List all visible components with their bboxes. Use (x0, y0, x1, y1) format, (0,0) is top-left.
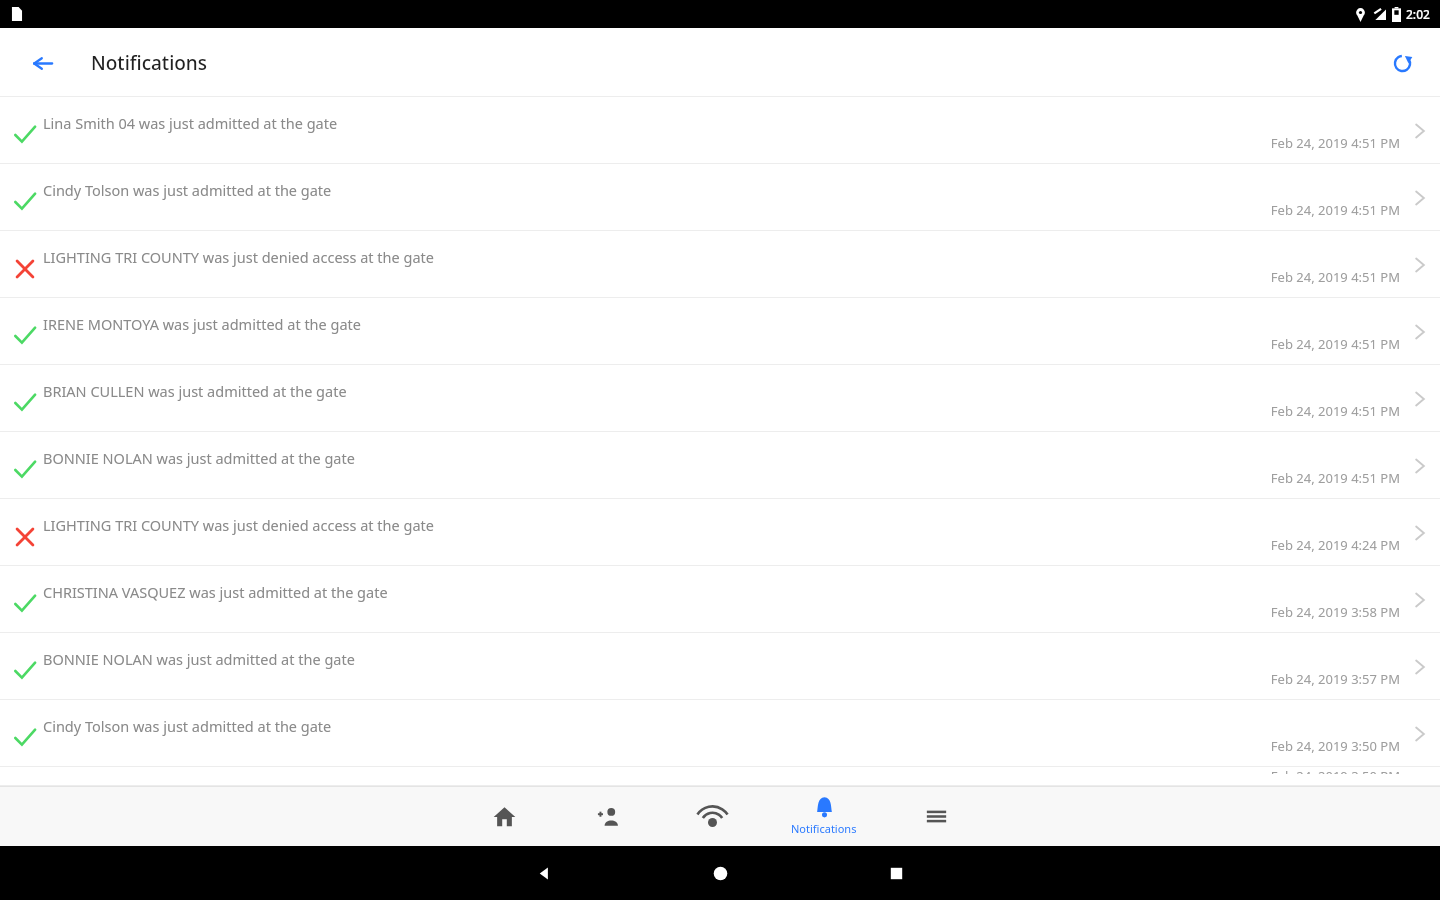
button[interactable]: Refresh (1380, 41, 1424, 85)
button[interactable]: Add guest (564, 786, 652, 846)
button[interactable]: Home (696, 849, 744, 897)
button[interactable]: Lina Smith 04 was just admitted at the g… (0, 97, 1440, 164)
staticText: Cindy Tolson was just admitted at the ga… (43, 783, 332, 786)
button[interactable]: BONNIE NOLAN was just admitted at the ga… (0, 432, 1440, 499)
button[interactable]: Notifications (772, 786, 876, 846)
staticText: BONNIE NOLAN was just admitted at the ga… (43, 448, 355, 468)
button[interactable]: Cindy Tolson was just admitted at the ga… (0, 164, 1440, 231)
staticText: Cindy Tolson was just admitted at the ga… (43, 180, 332, 200)
staticText: 2:02 (1406, 6, 1430, 22)
staticText: Feb 24, 2019 3:57 PM (1270, 670, 1400, 688)
staticText: Feb 24, 2019 3:58 PM (1270, 603, 1400, 621)
staticText: Feb 24, 2019 4:24 PM (1270, 536, 1400, 554)
staticText: Feb 24, 2019 4:51 PM (1270, 469, 1400, 487)
button[interactable]: Recents (872, 849, 920, 897)
staticText: Feb 24, 2019 4:51 PM (1270, 335, 1400, 353)
staticText: IRENE MONTOYA was just admitted at the g… (43, 314, 361, 334)
button[interactable]: Cindy Tolson was just admitted at the ga… (0, 700, 1440, 767)
button[interactable]: Menu (892, 786, 980, 846)
button[interactable]: Back (18, 39, 66, 87)
staticText: Lina Smith 04 was just admitted at the g… (43, 113, 338, 133)
staticText: CHRISTINA VASQUEZ was just admitted at t… (43, 582, 388, 602)
staticText: Cindy Tolson was just admitted at the ga… (43, 716, 332, 736)
staticText: Notifications (91, 50, 208, 76)
staticText: Feb 24, 2019 4:51 PM (1270, 268, 1400, 286)
staticText: LIGHTING TRI COUNTY was just denied acce… (43, 515, 434, 535)
button[interactable]: BONNIE NOLAN was just admitted at the ga… (0, 633, 1440, 700)
staticText: Feb 24, 2019 4:51 PM (1270, 402, 1400, 420)
button[interactable]: Back (520, 849, 568, 897)
button[interactable]: LIGHTING TRI COUNTY was just denied acce… (0, 231, 1440, 298)
staticText: BONNIE NOLAN was just admitted at the ga… (43, 649, 355, 669)
button[interactable]: Cindy Tolson was just admitted at the ga… (0, 767, 1440, 786)
button[interactable]: BRIAN CULLEN was just admitted at the ga… (0, 365, 1440, 432)
staticText: LIGHTING TRI COUNTY was just denied acce… (43, 247, 434, 267)
button[interactable]: Home (460, 786, 548, 846)
staticText: Feb 24, 2019 3:50 PM (1270, 767, 1400, 774)
staticText: BRIAN CULLEN was just admitted at the ga… (43, 381, 347, 401)
staticText: Feb 24, 2019 3:50 PM (1270, 737, 1400, 755)
button[interactable]: CHRISTINA VASQUEZ was just admitted at t… (0, 566, 1440, 633)
button[interactable]: Wi-Fi (668, 786, 756, 846)
staticText: Feb 24, 2019 4:51 PM (1270, 201, 1400, 219)
staticText: Feb 24, 2019 4:51 PM (1270, 134, 1400, 152)
button[interactable]: IRENE MONTOYA was just admitted at the g… (0, 298, 1440, 365)
button[interactable]: LIGHTING TRI COUNTY was just denied acce… (0, 499, 1440, 566)
staticText: Notifications (791, 821, 857, 836)
